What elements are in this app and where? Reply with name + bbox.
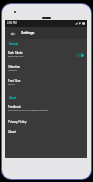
staticText: Medium [8, 83, 15, 85]
button[interactable]: Dark Mode [5, 49, 87, 63]
button[interactable]: Toggle Dark Mode [76, 53, 84, 57]
button[interactable]: Font Size [5, 77, 87, 91]
staticText: Privacy Policy [8, 120, 27, 124]
staticText: General [9, 43, 18, 46]
staticText: Customize [8, 69, 17, 71]
button[interactable]: Feedback [5, 103, 87, 118]
staticText: About [8, 130, 16, 134]
staticText: Enable Dark Mode [8, 55, 24, 57]
staticText: Dark Mode [8, 51, 23, 55]
staticText: Vibration [8, 65, 20, 69]
staticText: Feedback [8, 105, 21, 109]
button[interactable]: Back [8, 29, 17, 38]
staticText: Font Size [8, 79, 21, 83]
staticText: 2:08 PM [7, 22, 17, 25]
button[interactable]: About [5, 128, 87, 139]
staticText: Report technical issues or suggest new f… [8, 109, 49, 111]
button[interactable]: Vibration [5, 63, 87, 77]
staticText: About [9, 97, 16, 100]
button[interactable]: Privacy Policy [5, 118, 87, 128]
staticText: Settings [21, 31, 35, 35]
